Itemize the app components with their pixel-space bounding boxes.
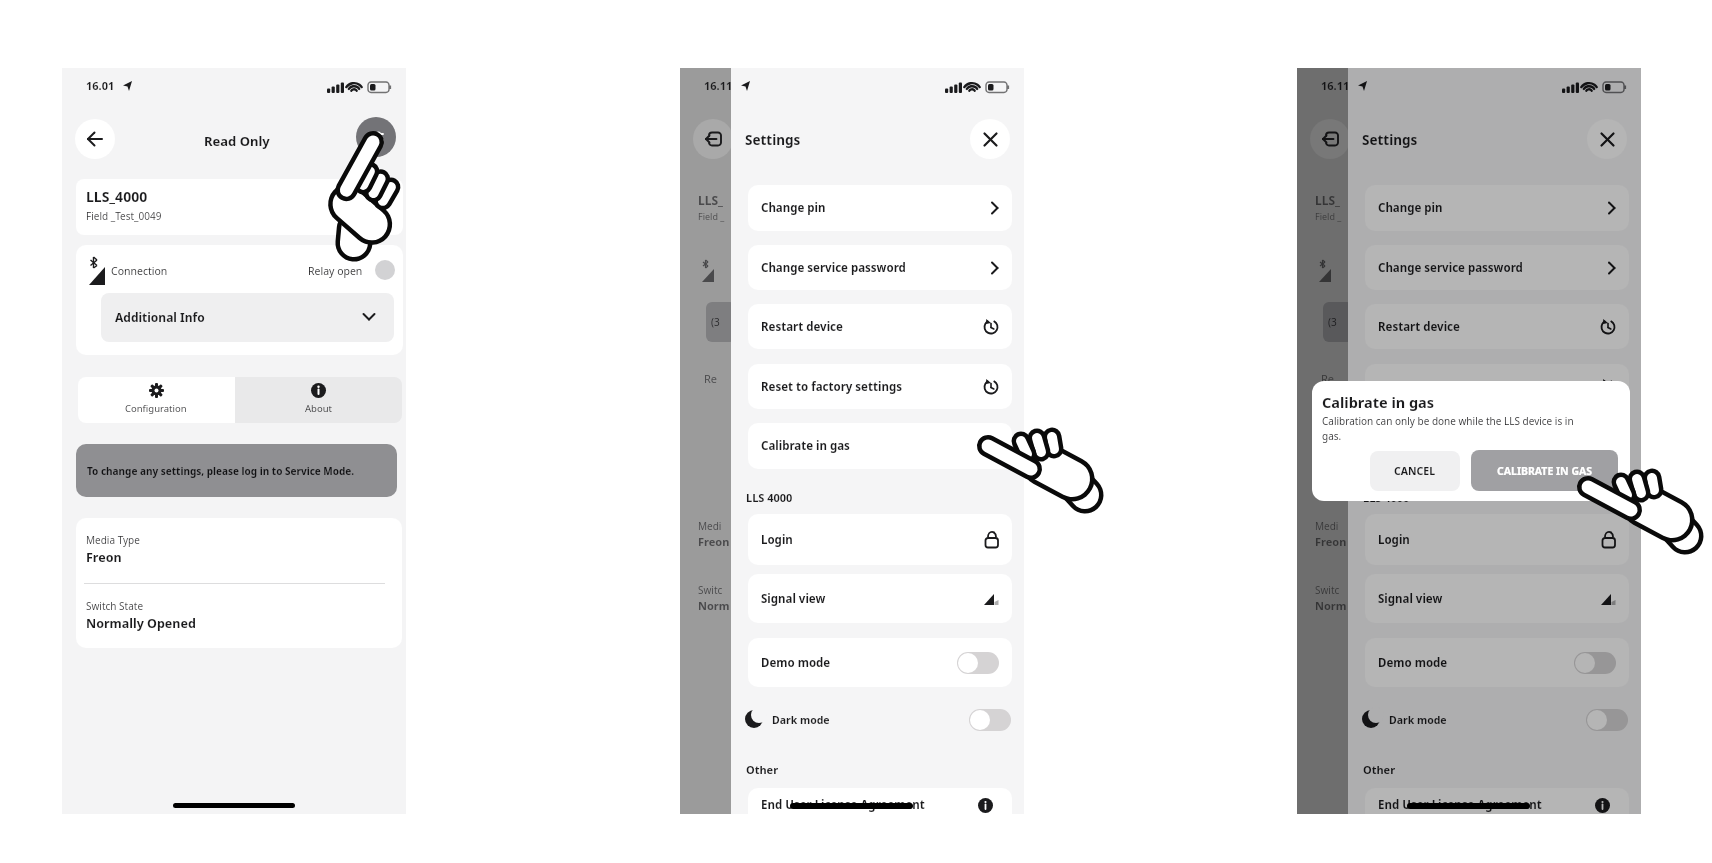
staticText: Norm <box>1315 598 1347 613</box>
staticText: Change pin <box>1378 200 1443 216</box>
staticText: 16.11 <box>704 78 733 93</box>
staticText: Switc <box>1315 583 1340 597</box>
button[interactable]: CANCEL <box>1370 451 1460 491</box>
staticText: Calibrate in gas <box>1322 392 1435 412</box>
button[interactable]: About <box>235 377 402 423</box>
staticText: Switch State <box>86 599 144 613</box>
staticText: Login <box>761 532 793 548</box>
button[interactable]: Demo mode <box>1365 638 1629 687</box>
staticText: Field _ <box>698 210 725 222</box>
button[interactable]: Signal view <box>748 574 1012 623</box>
staticText: Freon <box>86 549 122 566</box>
button[interactable]: Restart device <box>748 304 1012 349</box>
staticText: To change any settings, please log in to… <box>87 464 355 478</box>
button[interactable]: Login <box>748 514 1012 565</box>
staticText: End User License Agreement <box>1378 797 1542 813</box>
button[interactable]: Calibrate in gas <box>1365 423 1629 469</box>
button[interactable] <box>957 652 999 674</box>
staticText: Dark mode <box>1389 713 1447 727</box>
staticText: 16.01 <box>86 78 115 93</box>
staticText: Dark mode <box>772 713 830 727</box>
staticText: gas. <box>1322 429 1342 443</box>
button[interactable]: Calibrate in gas <box>748 423 1012 469</box>
staticText: Norm <box>698 598 730 613</box>
staticText: Additional Info <box>115 309 205 325</box>
staticText: LLS_ <box>1315 192 1340 208</box>
staticText: Freon <box>698 534 730 549</box>
staticText: Signal view <box>1378 591 1443 607</box>
staticText: Relay open <box>308 264 363 278</box>
button[interactable]: End User License Agreement <box>748 788 1012 814</box>
staticText: Calibrate in gas <box>1378 438 1467 454</box>
staticText: Calibrate in gas <box>761 438 850 454</box>
button[interactable] <box>75 119 115 159</box>
staticText: LLS_4000 <box>86 187 148 206</box>
button[interactable]: Reset to factory settings <box>1365 364 1629 409</box>
staticText: Other <box>1363 762 1396 777</box>
staticText: Medi <box>1315 519 1339 533</box>
button[interactable]: Change pin <box>1365 185 1629 231</box>
staticText: Restart device <box>1378 319 1460 335</box>
staticText: Demo mode <box>761 655 831 671</box>
staticText: LLS 4000 <box>746 490 793 505</box>
button[interactable]: Signal view <box>1365 574 1629 623</box>
staticText: Signal view <box>761 591 826 607</box>
staticText: Re <box>704 371 718 386</box>
staticText: About <box>305 402 332 415</box>
staticText: Configuration <box>125 402 187 415</box>
staticText: Re <box>1321 371 1335 386</box>
staticText: Switc <box>698 583 723 597</box>
staticText: CANCEL <box>1394 464 1436 478</box>
staticText: Connection <box>111 264 168 278</box>
staticText: Medi <box>698 519 722 533</box>
button[interactable] <box>1587 119 1627 159</box>
staticText: (3 <box>711 315 720 329</box>
staticText: CALIBRATE IN GAS <box>1497 464 1593 478</box>
button[interactable]: Change service password <box>1365 245 1629 290</box>
staticText: Settings <box>745 131 801 149</box>
button[interactable]: End User License Agreement <box>1365 788 1629 814</box>
button[interactable]: CALIBRATE IN GAS <box>1471 450 1618 491</box>
button[interactable]: Demo mode <box>748 638 1012 687</box>
staticText: End User License Agreement <box>761 797 925 813</box>
button[interactable] <box>970 119 1010 159</box>
button[interactable] <box>969 709 1011 731</box>
staticText: Demo mode <box>1378 655 1448 671</box>
staticText: LLS 4000 <box>1363 490 1410 505</box>
button[interactable]: LLS_4000 <box>76 179 403 235</box>
staticText: Settings <box>1362 131 1418 149</box>
staticText: Restart device <box>761 319 843 335</box>
staticText: Reset to factory settings <box>1378 379 1519 395</box>
staticText: Other <box>746 762 779 777</box>
button[interactable] <box>1586 709 1628 731</box>
staticText: Calibration can only be done while the L… <box>1322 414 1574 428</box>
button[interactable]: Change pin <box>748 185 1012 231</box>
staticText: (3 <box>1328 315 1337 329</box>
staticText: 16.11 <box>1321 78 1350 93</box>
staticText: Field _Test_0049 <box>86 209 162 223</box>
button[interactable]: Change service password <box>748 245 1012 290</box>
button[interactable]: Additional Info <box>101 293 394 342</box>
button[interactable] <box>1574 652 1616 674</box>
staticText: Change service password <box>761 260 906 276</box>
staticText: Reset to factory settings <box>761 379 902 395</box>
button[interactable]: Restart device <box>1365 304 1629 349</box>
staticText: Media Type <box>86 533 140 547</box>
staticText: Read Only <box>204 132 270 150</box>
staticText: Normally Opened <box>86 615 196 632</box>
staticText: Change service password <box>1378 260 1523 276</box>
button[interactable] <box>375 260 395 280</box>
staticText: Login <box>1378 532 1410 548</box>
staticText: Freon <box>1315 534 1347 549</box>
staticText: Change pin <box>761 200 826 216</box>
staticText: LLS_ <box>698 192 723 208</box>
button[interactable]: Login <box>1365 514 1629 565</box>
staticText: Field _ <box>1315 210 1342 222</box>
button[interactable]: Reset to factory settings <box>748 364 1012 409</box>
button[interactable] <box>356 117 396 157</box>
button[interactable]: Configuration <box>78 377 235 423</box>
